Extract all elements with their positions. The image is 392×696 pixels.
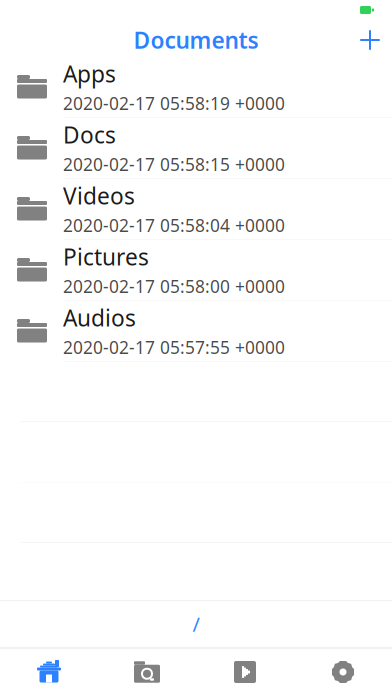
staticText: 2020-02-17 05:58:04 +0000 [63, 214, 285, 237]
staticText: / [192, 611, 199, 637]
button[interactable]: Add [348, 20, 392, 60]
button[interactable]: Audios [0, 300, 392, 361]
button[interactable]: Pictures [0, 239, 392, 300]
staticText: Pictures [63, 242, 149, 272]
button[interactable]: Videos [0, 178, 392, 239]
staticText: Audios [63, 303, 136, 333]
staticText: Videos [63, 181, 135, 211]
staticText: 2020-02-17 05:58:19 +0000 [63, 92, 285, 115]
button[interactable]: Browse [98, 648, 196, 695]
button[interactable]: Apps [0, 56, 392, 117]
button[interactable]: Home [0, 648, 98, 695]
button[interactable]: Player [196, 648, 294, 695]
button[interactable]: Settings [294, 648, 392, 695]
staticText: Documents [133, 25, 258, 55]
staticText: Docs [63, 120, 116, 150]
staticText: 2020-02-17 05:58:15 +0000 [63, 153, 285, 176]
button[interactable]: Docs [0, 117, 392, 178]
staticText: 2020-02-17 05:58:00 +0000 [63, 275, 285, 298]
staticText: Apps [63, 59, 116, 89]
staticText: 2020-02-17 05:57:55 +0000 [63, 336, 285, 359]
